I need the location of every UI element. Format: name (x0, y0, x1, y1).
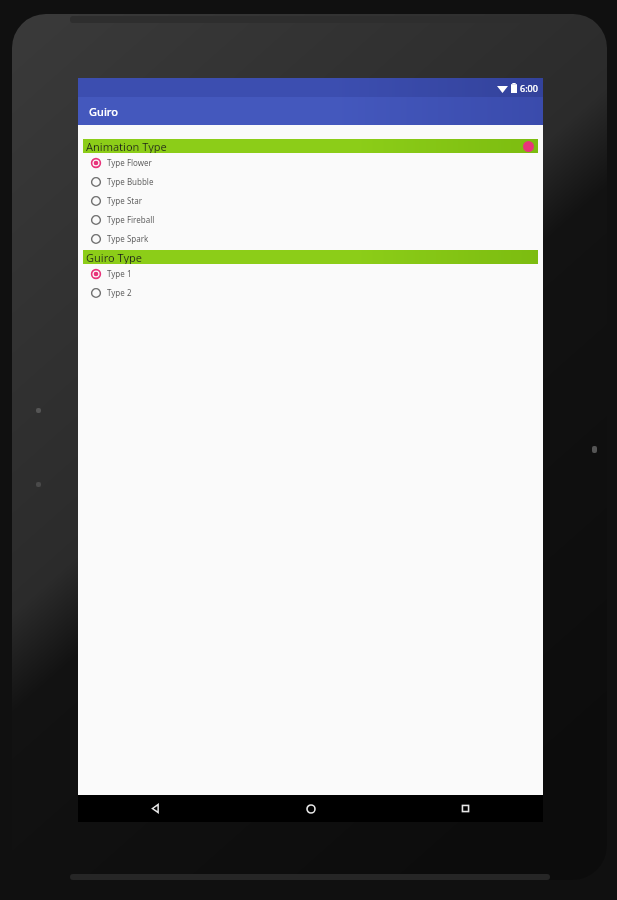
staticText: Type Bubble (107, 176, 154, 187)
staticText: Type 2 (107, 287, 132, 298)
button[interactable]: Type Bubble (78, 172, 543, 191)
staticText: Type Flower (107, 157, 152, 168)
staticText: Type Fireball (107, 214, 155, 225)
button[interactable]: Home (233, 795, 388, 822)
button[interactable]: Type Fireball (78, 210, 543, 229)
staticText: Type 1 (107, 268, 132, 279)
staticText: Type Spark (107, 233, 149, 244)
button[interactable]: Back (78, 795, 233, 822)
staticText: 6:00 (520, 82, 538, 94)
button[interactable]: Type Star (78, 191, 543, 210)
button[interactable]: Type Flower (78, 153, 543, 172)
staticText: Animation Type (86, 139, 167, 153)
button[interactable]: Type 2 (78, 283, 543, 302)
button[interactable]: Recent apps (388, 795, 543, 822)
staticText: Guiro Type (86, 250, 142, 264)
button[interactable]: Type Spark (78, 229, 543, 248)
button[interactable]: Guiro Type (83, 250, 538, 264)
staticText: Type Star (107, 195, 142, 206)
button[interactable]: Type 1 (78, 264, 543, 283)
button[interactable]: Animation Type (83, 139, 538, 153)
staticText: Guiro (89, 104, 119, 119)
